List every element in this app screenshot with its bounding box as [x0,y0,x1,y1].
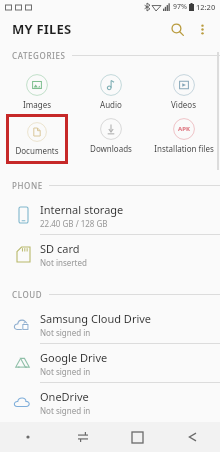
button[interactable]: Search [164,16,190,42]
staticText: OneDrive [40,389,89,404]
staticText: Audio [100,99,122,110]
staticText: 97% [173,2,187,12]
staticText: Google Drive [40,350,108,365]
button[interactable]: Home [110,422,165,452]
staticText: SD card [40,241,80,256]
staticText: CATEGORIES [12,50,66,61]
staticText: 12:20 [196,2,216,12]
button[interactable]: Back [165,422,220,452]
button[interactable]: Internal storage [0,196,220,234]
staticText: Videos [171,99,196,110]
button[interactable]: APK [147,114,220,158]
button[interactable]: Google Drive [0,344,220,382]
staticText: Not signed in [40,405,91,416]
staticText: Samsung Cloud Drive [40,311,152,326]
staticText: CLOUD [12,289,43,300]
staticText: Not signed in [40,327,91,338]
button[interactable]: Audio [74,70,147,114]
button[interactable]: Recents [55,422,110,452]
button[interactable]: Keyboard [0,422,55,452]
staticText: Not inserted [40,257,87,268]
button[interactable]: OneDrive [0,383,220,421]
staticText: APK [178,125,190,133]
button[interactable]: Documents [9,117,65,161]
staticText: Documents [15,145,59,156]
staticText: Not signed in [40,366,91,377]
staticText: MY FILES [12,20,72,38]
staticText: Downloads [90,143,132,154]
button[interactable]: SD card [0,235,220,273]
staticText: Installation files [154,143,214,154]
button[interactable]: Samsung Cloud Drive [0,305,220,343]
staticText: Images [23,99,51,110]
button[interactable]: Videos [147,70,220,114]
button[interactable]: More options [190,17,214,41]
staticText: 22.40 GB / 128 GB [40,218,108,229]
staticText: Internal storage [40,202,124,217]
button[interactable]: Images [0,70,74,114]
button[interactable]: Downloads [74,114,147,158]
staticText: PHONE [12,180,43,191]
